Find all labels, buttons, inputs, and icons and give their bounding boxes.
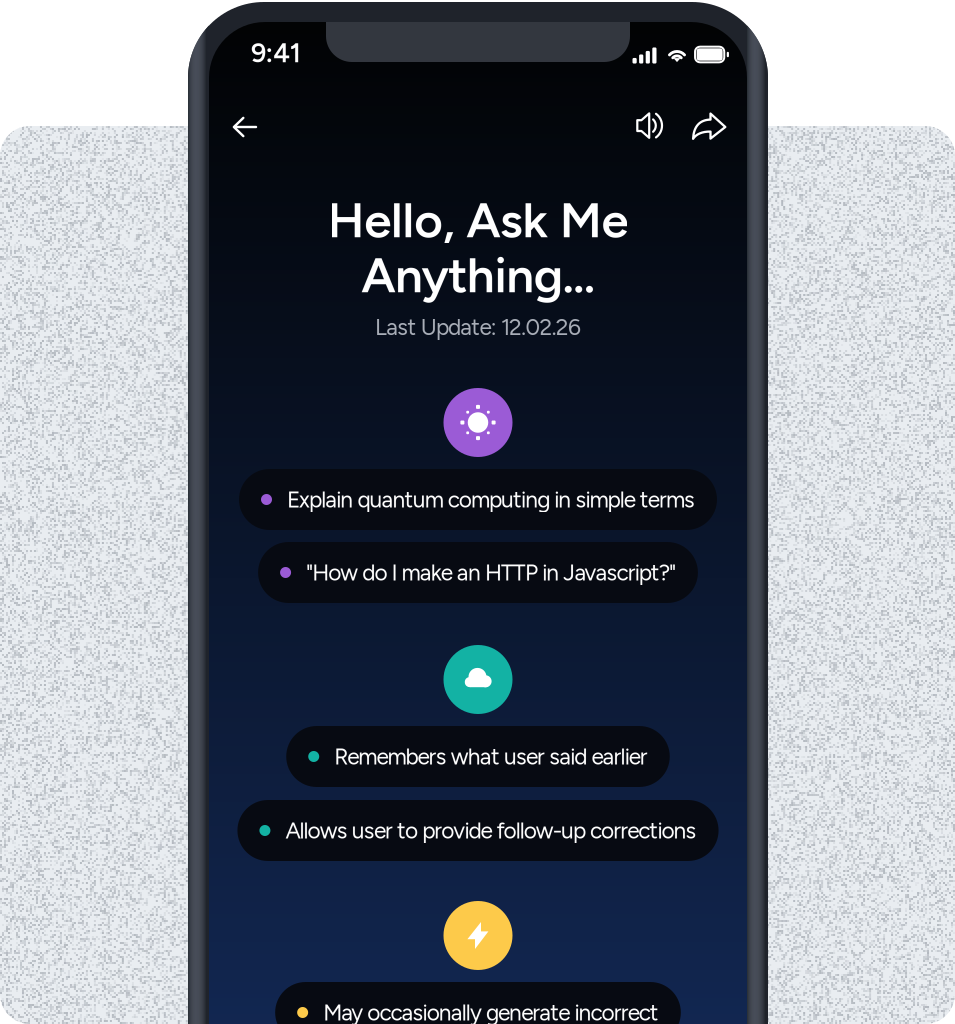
staticText: Allows user to provide follow-up correct… [285,817,696,844]
button[interactable]: Category [443,388,512,457]
staticText: Last Update: 12.02.26 [375,313,581,341]
button[interactable]: May occasionally generate incorrect [275,982,681,1024]
button[interactable]: Allows user to provide follow-up correct… [237,800,718,861]
button[interactable]: Read aloud [628,103,674,149]
button[interactable]: "How do I make an HTTP in Javascript?" [258,542,698,603]
button[interactable]: Share [686,103,732,149]
button[interactable]: Category [443,645,512,714]
button[interactable]: Explain quantum computing in simple term… [239,469,717,530]
staticText: Anything... [361,245,595,305]
button[interactable]: Remembers what user said earlier [286,726,670,787]
staticText: Remembers what user said earlier [334,743,648,770]
button[interactable]: Back [222,104,268,150]
staticText: 9:41 [251,37,301,69]
staticText: Explain quantum computing in simple term… [287,486,695,513]
button[interactable]: Category [443,901,512,970]
staticText: "How do I make an HTTP in Javascript?" [306,559,676,586]
staticText: Hello, Ask Me [328,190,628,250]
staticText: May occasionally generate incorrect [323,999,659,1024]
